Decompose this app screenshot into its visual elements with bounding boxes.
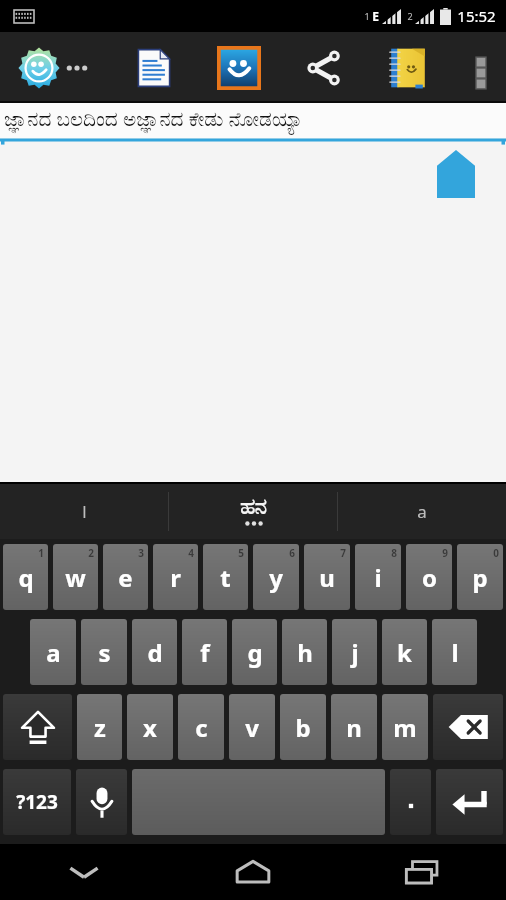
button[interactable]: p: [457, 544, 503, 610]
button[interactable]: Hide keyboard: [0, 844, 168, 900]
staticText: ಜ್ಞಾನದ ಬಲದಿಂದ ಅಜ್ಞಾನದ ಕೇಡು ನೋಡಯ್ಯಾ: [4, 105, 303, 132]
button[interactable]: More options: [464, 43, 498, 93]
button[interactable]: Shift: [3, 694, 72, 760]
staticText: s: [98, 636, 111, 669]
staticText: j: [351, 636, 359, 669]
button[interactable]: m: [382, 694, 428, 760]
button[interactable]: Enter: [436, 769, 503, 835]
staticText: ಹನ: [240, 497, 267, 518]
other: Text cursor handle: [437, 150, 475, 198]
staticText: a: [46, 636, 61, 669]
button[interactable]: q: [3, 544, 48, 610]
button[interactable]: Period: [390, 769, 431, 835]
button[interactable]: l: [432, 619, 477, 685]
staticText: p: [472, 561, 488, 594]
staticText: f: [200, 636, 210, 669]
staticText: 4: [188, 546, 194, 560]
button[interactable]: s: [81, 619, 127, 685]
staticText: z: [94, 711, 106, 744]
button[interactable]: c: [178, 694, 224, 760]
staticText: k: [397, 636, 412, 669]
button[interactable]: ?123: [3, 769, 71, 835]
button[interactable]: Space: [132, 769, 385, 835]
staticText: d: [147, 636, 163, 669]
staticText: n: [346, 711, 362, 744]
staticText: a: [417, 500, 427, 523]
staticText: g: [247, 636, 263, 669]
button[interactable]: w: [53, 544, 98, 610]
staticText: 9: [442, 546, 448, 560]
button[interactable]: e: [103, 544, 148, 610]
staticText: ?123: [16, 789, 58, 815]
button[interactable]: u: [304, 544, 350, 610]
staticText: b: [295, 711, 311, 744]
button[interactable]: v: [229, 694, 275, 760]
button[interactable]: Home: [168, 844, 337, 900]
staticText: v: [245, 711, 259, 744]
staticText: h: [297, 636, 313, 669]
button[interactable]: Emoji keyboard: [209, 38, 269, 98]
staticText: E: [372, 8, 379, 24]
staticText: w: [65, 561, 86, 594]
staticText: e: [118, 561, 133, 594]
button[interactable]: f: [182, 619, 227, 685]
staticText: l: [82, 500, 87, 523]
button[interactable]: j: [332, 619, 377, 685]
button[interactable]: a: [338, 484, 506, 539]
button[interactable]: Document: [126, 40, 182, 96]
button[interactable]: g: [232, 619, 277, 685]
staticText: l: [451, 636, 459, 669]
staticText: 2: [407, 10, 413, 22]
staticText: o: [422, 561, 437, 594]
staticText: 7: [340, 546, 346, 560]
button[interactable]: a: [30, 619, 76, 685]
button[interactable]: z: [77, 694, 122, 760]
staticText: r: [170, 561, 181, 594]
staticText: u: [319, 561, 335, 594]
button[interactable]: Backspace: [433, 694, 503, 760]
staticText: q: [18, 561, 34, 594]
button[interactable]: r: [153, 544, 198, 610]
button[interactable]: Share: [296, 40, 352, 96]
button[interactable]: Recent apps: [337, 844, 506, 900]
staticText: m: [393, 711, 417, 744]
button[interactable]: Voice input: [76, 769, 127, 835]
staticText: 3: [138, 546, 144, 560]
staticText: t: [220, 561, 231, 594]
staticText: 5: [238, 546, 244, 560]
button[interactable]: h: [282, 619, 327, 685]
staticText: 1: [364, 10, 370, 22]
staticText: 1: [38, 546, 44, 560]
staticText: 8: [391, 546, 397, 560]
staticText: 2: [88, 546, 94, 560]
staticText: 6: [289, 546, 295, 560]
button[interactable]: t: [203, 544, 248, 610]
button[interactable]: Notebook: [379, 39, 437, 97]
button[interactable]: k: [382, 619, 427, 685]
staticText: 15:52: [457, 6, 496, 26]
button[interactable]: n: [331, 694, 377, 760]
button[interactable]: o: [406, 544, 452, 610]
button[interactable]: b: [280, 694, 326, 760]
button[interactable]: d: [132, 619, 177, 685]
staticText: c: [195, 711, 208, 744]
staticText: x: [143, 711, 157, 744]
button[interactable]: ಜ್ಞಾನದ ಬಲದಿಂದ ಅಜ್ಞಾನದ ಕೇಡು ನೋಡಯ್ಯಾ: [0, 103, 506, 138]
staticText: i: [374, 561, 382, 594]
button[interactable]: y: [253, 544, 299, 610]
button[interactable]: Input method: [8, 39, 98, 97]
button[interactable]: ಹನ: [169, 484, 337, 539]
staticText: 0: [493, 546, 499, 560]
button[interactable]: x: [127, 694, 173, 760]
button[interactable]: l: [0, 484, 168, 539]
button[interactable]: i: [355, 544, 401, 610]
staticText: y: [269, 561, 283, 594]
